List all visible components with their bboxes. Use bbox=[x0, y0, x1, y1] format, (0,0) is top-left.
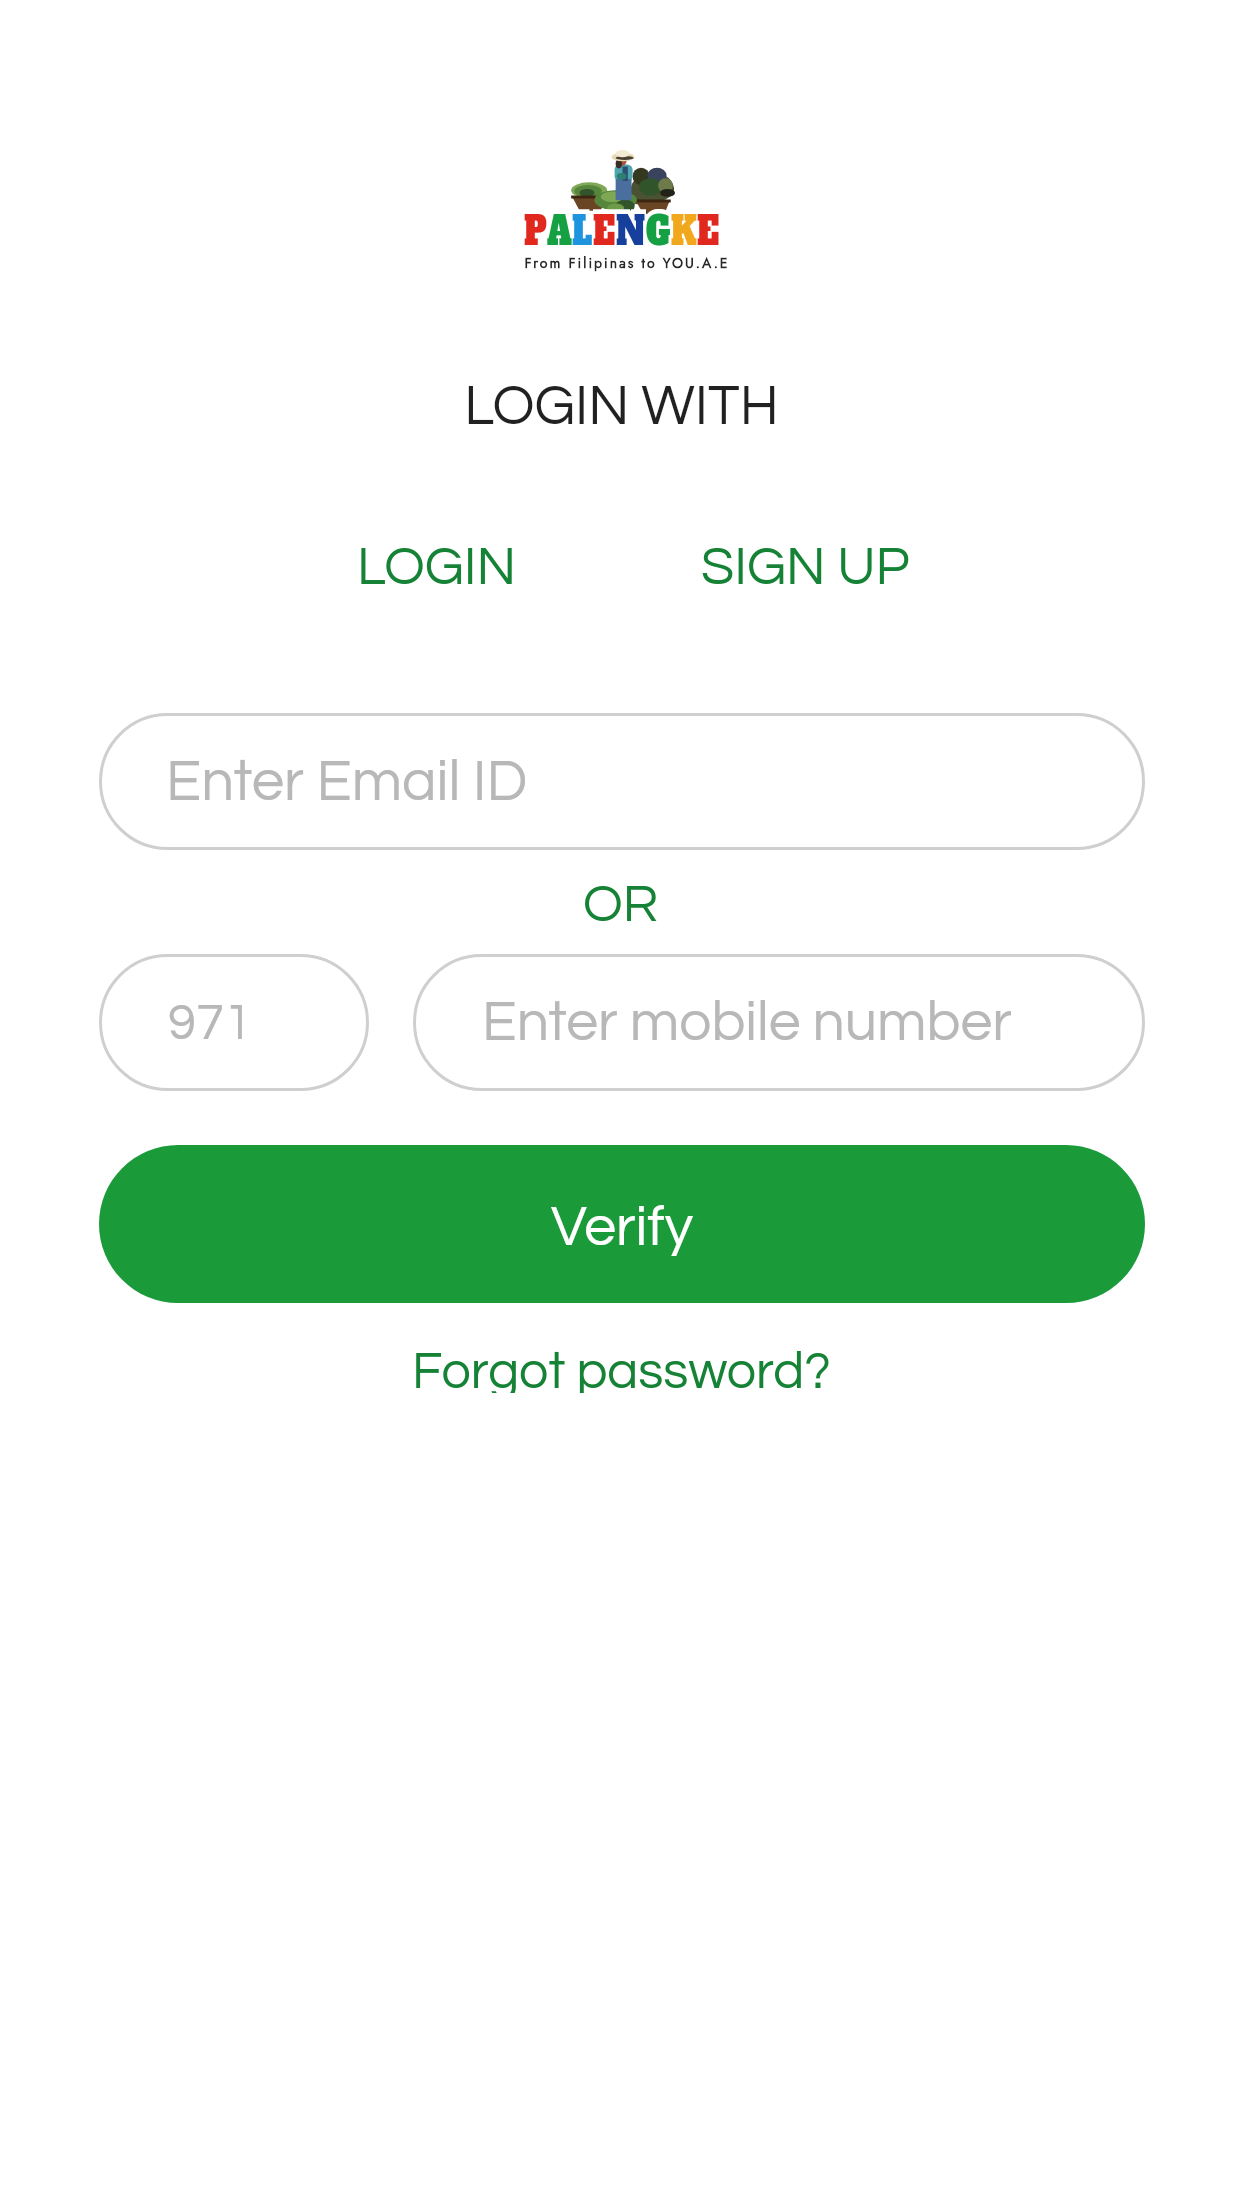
button[interactable]: LOGIN bbox=[253, 513, 621, 623]
staticText: 971 bbox=[168, 997, 253, 1050]
button[interactable]: Verify bbox=[99, 1145, 1145, 1303]
staticText: E bbox=[697, 203, 720, 247]
staticText: From Filipinas to YOU.A.E bbox=[524, 253, 730, 273]
button[interactable]: SIGN UP bbox=[621, 513, 989, 623]
staticText: G bbox=[646, 203, 671, 247]
staticText: G bbox=[646, 203, 671, 247]
staticText: Enter mobile number bbox=[482, 993, 1012, 1052]
staticText: Enter Email ID bbox=[166, 752, 528, 812]
staticText: N bbox=[616, 203, 646, 247]
staticText: E bbox=[593, 203, 616, 247]
staticText: L bbox=[572, 203, 593, 247]
staticText: E bbox=[697, 203, 720, 247]
button[interactable]: Forgot password? bbox=[394, 1335, 849, 1403]
button[interactable]: Country code 971 bbox=[99, 954, 369, 1091]
staticText: LOGIN bbox=[357, 540, 517, 596]
button[interactable]: Enter Email ID bbox=[99, 713, 1145, 850]
staticText: LOGIN WITH bbox=[464, 378, 779, 436]
staticText: OR bbox=[583, 878, 659, 933]
staticText: N bbox=[616, 203, 646, 247]
staticText: K bbox=[671, 203, 697, 247]
staticText: K bbox=[671, 203, 697, 247]
staticText: A bbox=[547, 203, 572, 247]
other: Palengke logo bbox=[519, 146, 725, 272]
staticText: P bbox=[524, 203, 547, 247]
staticText: Verify bbox=[551, 1198, 694, 1257]
staticText: P bbox=[524, 203, 547, 247]
staticText: E bbox=[593, 203, 616, 247]
staticText: SIGN UP bbox=[701, 540, 910, 596]
button[interactable]: Enter mobile number bbox=[413, 954, 1145, 1091]
staticText: L bbox=[572, 203, 593, 247]
staticText: Forgot password? bbox=[412, 1345, 831, 1393]
staticText: A bbox=[547, 203, 572, 247]
